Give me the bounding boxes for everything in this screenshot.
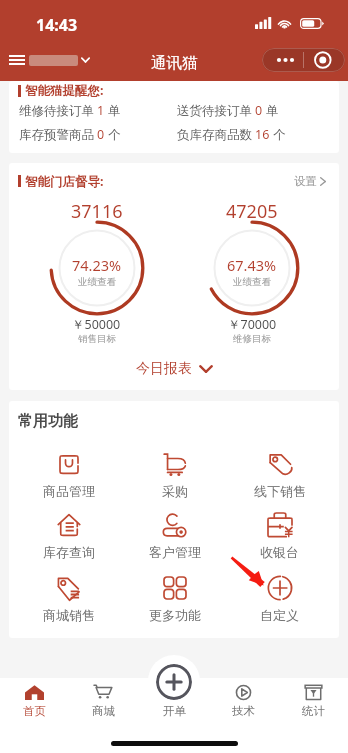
button[interactable]: 自定义 <box>227 576 332 623</box>
button[interactable]: 商城 <box>69 678 138 723</box>
staticText: 通讯猫 <box>151 53 198 73</box>
staticText: 16 <box>255 126 270 143</box>
button[interactable]: 今日报表 <box>132 356 217 382</box>
staticText: 维修待接订单 <box>19 103 94 119</box>
staticText: 0 <box>97 126 105 143</box>
button[interactable]: 维修待接订单 <box>19 102 177 119</box>
staticText: 个 <box>273 127 286 143</box>
staticText: 47205 <box>226 199 278 224</box>
staticText: 智能猫提醒您: <box>25 82 104 99</box>
staticText: 设置 <box>294 174 317 188</box>
staticText: 负库存商品数 <box>177 127 252 143</box>
button[interactable]: 商品管理 <box>16 452 122 499</box>
staticText: 单 <box>266 103 279 119</box>
staticText: 线下销售 <box>254 483 306 499</box>
staticText: 智能门店督导: <box>25 173 104 190</box>
button[interactable]: 负库存商品数 <box>177 126 339 143</box>
button[interactable]: 首页 <box>0 678 69 723</box>
staticText: 送货待接订单 <box>177 103 252 119</box>
button[interactable]: 线下销售 <box>227 452 332 499</box>
button[interactable]: 送货待接订单 <box>177 102 339 119</box>
staticText: 库存预警商品 <box>19 127 94 143</box>
staticText: 14:43 <box>36 14 78 36</box>
staticText: 常用功能 <box>18 412 78 431</box>
button[interactable]: 商城销售 <box>16 576 122 623</box>
button[interactable]: 设置 <box>291 171 329 191</box>
button[interactable]: More options <box>262 48 345 72</box>
staticText: 维修目标 <box>233 333 271 345</box>
staticText: 个 <box>108 127 121 143</box>
button[interactable]: 更多功能 <box>122 576 227 623</box>
staticText: 客户管理 <box>149 544 201 560</box>
staticText: 0 <box>255 102 263 119</box>
staticText: 74.23% <box>72 255 122 275</box>
staticText: 67.43% <box>227 255 277 275</box>
staticText: 商城 <box>92 704 115 718</box>
button[interactable]: 收银台 <box>227 513 332 560</box>
staticText: 自定义 <box>260 607 299 623</box>
staticText: 今日报表 <box>136 360 192 378</box>
button[interactable]: 客户管理 <box>122 513 227 560</box>
staticText: 收银台 <box>260 544 299 560</box>
staticText: 首页 <box>23 704 46 718</box>
button[interactable]: 库存预警商品 <box>19 126 177 143</box>
staticText: 商品管理 <box>43 483 95 499</box>
staticText: 1 <box>97 102 105 119</box>
staticText: 统计 <box>302 704 325 718</box>
staticText: 开单 <box>163 704 186 718</box>
button[interactable]: 技术 <box>208 678 278 723</box>
staticText: 采购 <box>162 483 188 499</box>
button[interactable]: 采购 <box>122 452 227 499</box>
staticText: ￥50000 <box>72 316 121 333</box>
button[interactable]: 开单 New order <box>156 664 192 700</box>
staticText: 技术 <box>232 704 255 718</box>
staticText: 业绩查看 <box>78 276 116 288</box>
staticText: 更多功能 <box>149 607 201 623</box>
staticText: ￥70000 <box>228 316 277 333</box>
staticText: 库存查询 <box>43 544 95 560</box>
staticText: 37116 <box>71 199 123 224</box>
button[interactable]: 统计 <box>278 678 348 723</box>
staticText: 单 <box>108 103 121 119</box>
button[interactable]: 库存查询 <box>16 513 122 560</box>
staticText: 业绩查看 <box>233 276 271 288</box>
staticText: 销售目标 <box>78 333 116 345</box>
button[interactable]: Menu <box>4 48 95 72</box>
staticText: 商城销售 <box>43 607 95 623</box>
